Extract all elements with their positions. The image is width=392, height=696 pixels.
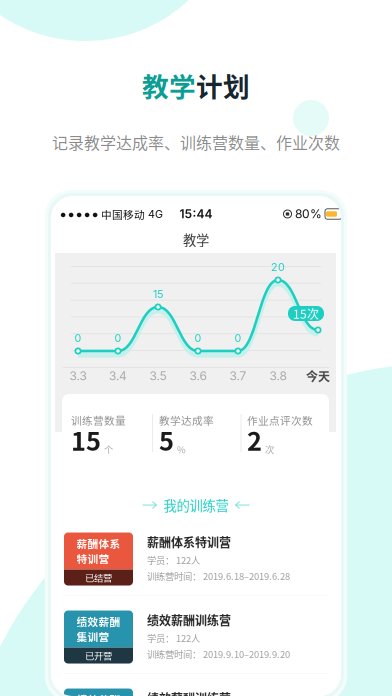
staticText: 3.4	[109, 369, 127, 383]
staticText: 教学	[183, 230, 209, 249]
staticText: 个	[104, 442, 113, 456]
staticText: 我的训练营	[163, 495, 228, 515]
staticText: 3.8	[269, 369, 286, 383]
staticText: 教学达成率	[159, 412, 214, 428]
button[interactable]: 薪酬体系 特训营	[51, 518, 341, 596]
staticText: 计划	[196, 66, 250, 104]
staticText: 今天	[306, 367, 330, 385]
staticText: 15	[71, 421, 101, 458]
staticText: 0	[74, 331, 81, 344]
staticText: 绩效薪酬训练营	[147, 689, 231, 696]
staticText: 3.3	[69, 369, 86, 383]
staticText: 绩效薪酬 集训营	[76, 692, 120, 696]
staticText: 3.5	[149, 369, 166, 383]
staticText: 中国移动	[101, 206, 145, 222]
staticText: 绩效薪酬训练营	[147, 611, 231, 629]
staticText: 已开营	[85, 649, 112, 662]
staticText: 次	[265, 442, 274, 456]
staticText: 学员： 122人	[147, 553, 200, 567]
staticText: 3.6	[189, 369, 206, 383]
staticText: 4G	[145, 207, 163, 220]
staticText: 教学	[142, 66, 196, 104]
staticText: 已结营	[85, 571, 112, 584]
staticText: 0	[194, 331, 201, 344]
button[interactable]: 绩效薪酬 集训营	[51, 674, 341, 696]
staticText: 薪酬体系 特训营	[76, 536, 120, 566]
staticText: 绩效薪酬 集训营	[76, 614, 120, 644]
staticText: 薪酬体系特训营	[147, 533, 231, 551]
staticText: 作业点评次数	[247, 412, 313, 428]
staticText: 20	[271, 260, 285, 273]
staticText: •••••	[59, 205, 99, 223]
staticText: 记录教学达成率、训练营数量、作业次数	[52, 130, 340, 154]
staticText: 2	[247, 421, 262, 458]
staticText: 训练营数量	[71, 412, 126, 428]
staticText: 15	[153, 287, 163, 300]
staticText: 学员： 122人	[147, 631, 200, 645]
staticText: 15:44	[179, 207, 212, 221]
staticText: 训练营时间： 2019.6.18–2019.6.28	[147, 569, 290, 583]
staticText: 15次	[293, 305, 319, 322]
staticText: 0	[114, 331, 121, 344]
staticText: 0	[234, 331, 241, 344]
staticText: 80%	[295, 207, 322, 221]
staticText: %	[177, 442, 186, 456]
staticText: 训练营时间： 2019.9.10–2019.9.20	[147, 647, 290, 661]
staticText: 5	[159, 421, 174, 458]
button[interactable]: 绩效薪酬 集训营	[51, 596, 341, 674]
staticText: 3.7	[229, 369, 246, 383]
